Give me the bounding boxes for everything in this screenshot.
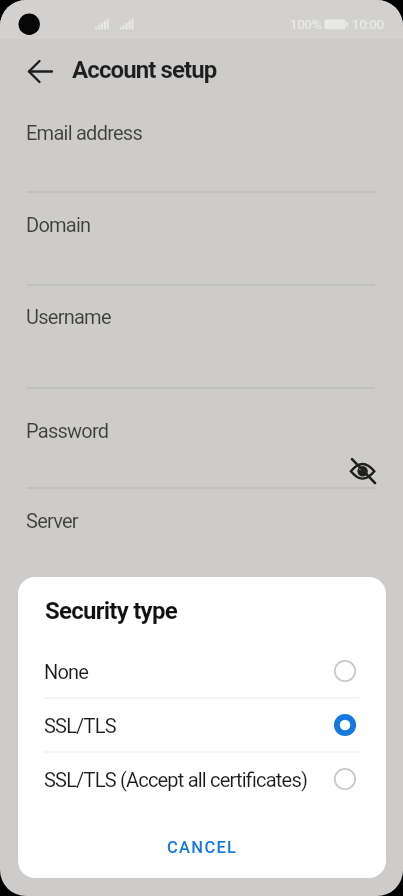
button[interactable]	[14, 52, 66, 92]
staticText: SSL/TLS	[44, 714, 116, 737]
staticText: Security type	[45, 597, 177, 625]
staticText: Domain	[26, 213, 91, 236]
button[interactable]: None	[18, 644, 385, 698]
staticText: None	[44, 660, 89, 683]
staticText: Email address	[26, 121, 143, 144]
staticText: 10:00	[352, 16, 384, 32]
staticText: Username	[26, 305, 111, 328]
button[interactable]: CANCEL	[152, 827, 252, 867]
staticText: CANCEL	[167, 838, 238, 857]
staticText: Server	[26, 509, 78, 532]
button[interactable]: SSL/TLS	[18, 698, 385, 752]
button[interactable]: SSL/TLS (Accept all certificates)	[18, 752, 385, 806]
staticText: SSL/TLS (Accept all certificates)	[44, 768, 308, 791]
staticText: 100%	[290, 16, 322, 32]
staticText: Account setup	[72, 56, 217, 84]
staticText: Password	[26, 419, 109, 442]
